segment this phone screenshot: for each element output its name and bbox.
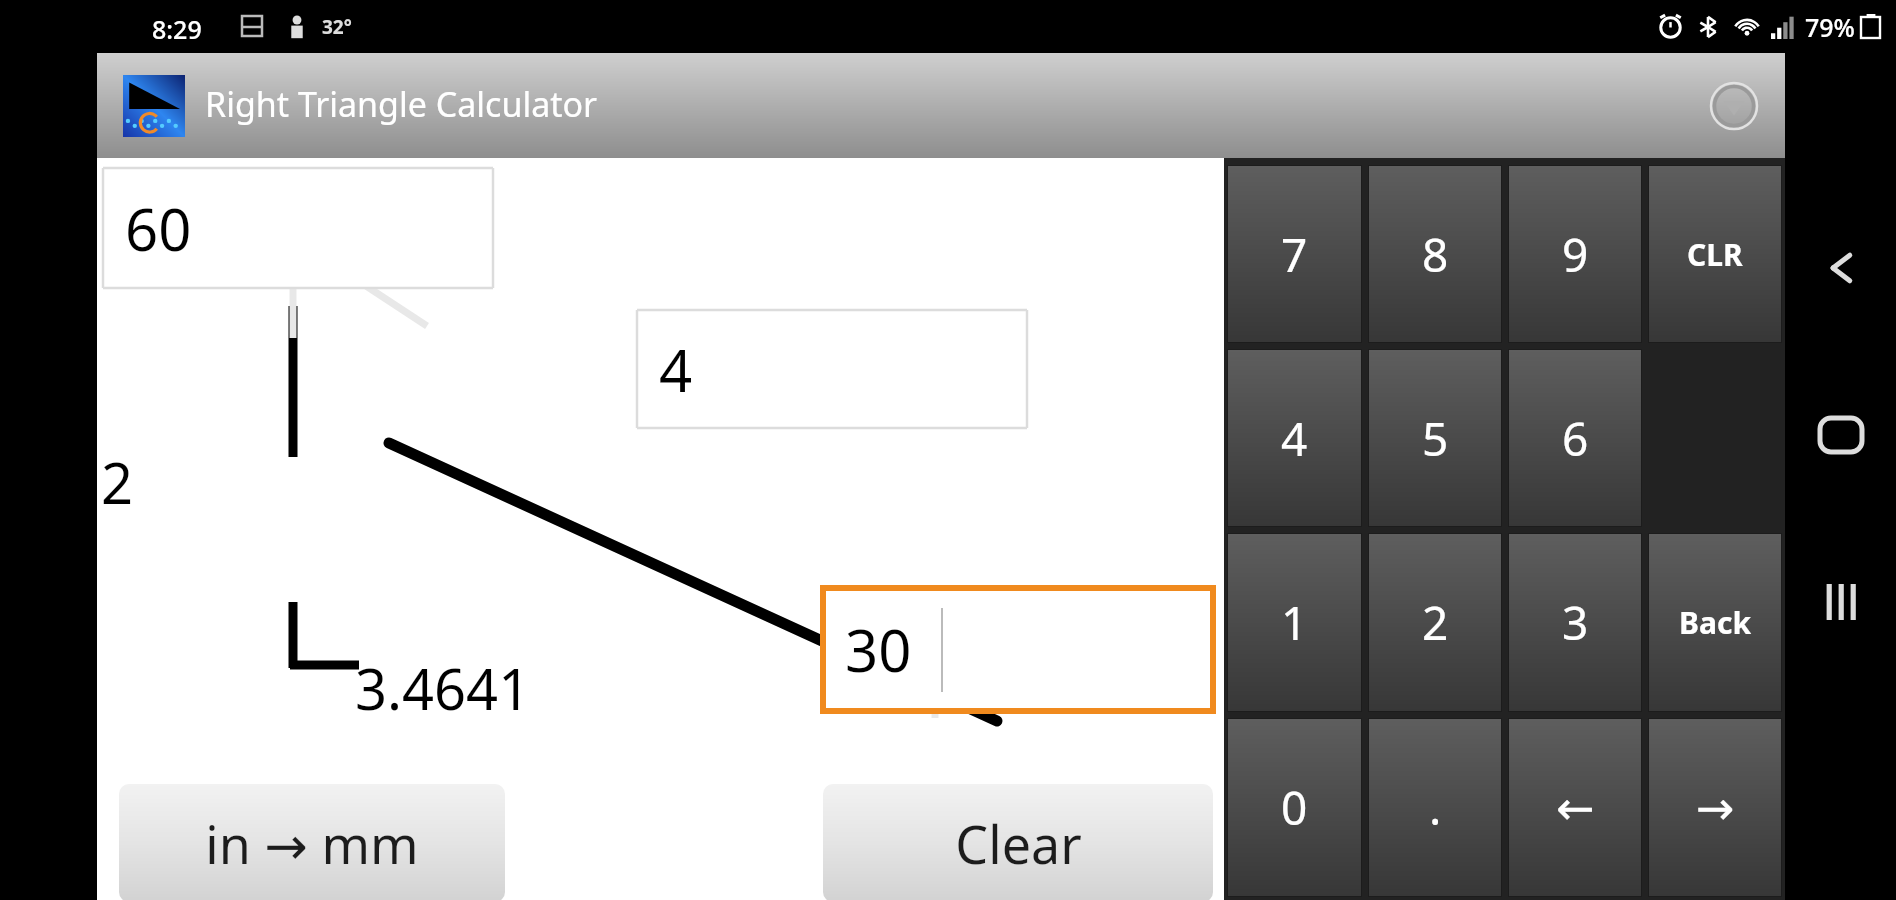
staticText: 8:29	[152, 12, 202, 46]
button[interactable]: 8	[1369, 166, 1501, 342]
staticText: 2	[101, 444, 134, 520]
staticText: Back	[1679, 602, 1751, 643]
staticText: →	[1696, 781, 1735, 835]
staticText: Right Triangle Calculator	[205, 81, 598, 127]
button[interactable]: 2	[1369, 534, 1501, 711]
button[interactable]: →	[1649, 719, 1781, 896]
button[interactable]: 6	[1509, 350, 1641, 526]
staticText: 4	[659, 330, 693, 409]
button[interactable]: .	[1369, 719, 1501, 896]
button[interactable]: Home	[1799, 393, 1883, 477]
button[interactable]: Back	[1649, 534, 1781, 711]
staticText: 1	[1281, 591, 1308, 654]
staticText: 3	[1562, 591, 1589, 654]
staticText: 4	[1281, 407, 1308, 470]
button[interactable]: Clear	[823, 784, 1213, 900]
button[interactable]: ←	[1509, 719, 1641, 896]
staticText: .	[1429, 776, 1442, 839]
staticText: CLR	[1687, 234, 1743, 275]
button[interactable]: CLR	[1649, 166, 1781, 342]
staticText: 0	[1281, 776, 1308, 839]
button[interactable]: More options	[1705, 77, 1763, 135]
button[interactable]: 3	[1509, 534, 1641, 711]
staticText: 60	[125, 189, 192, 268]
staticText: ←	[1556, 781, 1595, 835]
staticText: in → mm	[205, 808, 419, 879]
staticText: 79%	[1805, 10, 1855, 44]
button[interactable]: 5	[1369, 350, 1501, 526]
staticText: 3.4641	[355, 650, 531, 726]
staticText: 5	[1422, 407, 1449, 470]
button[interactable]: 4	[1228, 350, 1361, 526]
staticText: 2	[1422, 591, 1449, 654]
button[interactable]: 4	[637, 310, 1027, 428]
button[interactable]: 60	[103, 168, 493, 288]
staticText: 32°	[322, 14, 352, 40]
staticText: 9	[1562, 223, 1589, 286]
staticText: Clear	[955, 808, 1082, 879]
staticText: 8	[1422, 223, 1449, 286]
button[interactable]: in → mm	[119, 784, 505, 900]
button[interactable]: Recent apps	[1799, 560, 1883, 644]
button[interactable]: Back	[1799, 226, 1883, 310]
button[interactable]: 0	[1228, 719, 1361, 896]
staticText: 7	[1281, 223, 1308, 286]
button[interactable]: 9	[1509, 166, 1641, 342]
button[interactable]: 7	[1228, 166, 1361, 342]
staticText: 30	[845, 610, 912, 689]
button[interactable]: 1	[1228, 534, 1361, 711]
staticText: 6	[1562, 407, 1589, 470]
button[interactable]: 30	[823, 588, 1213, 711]
